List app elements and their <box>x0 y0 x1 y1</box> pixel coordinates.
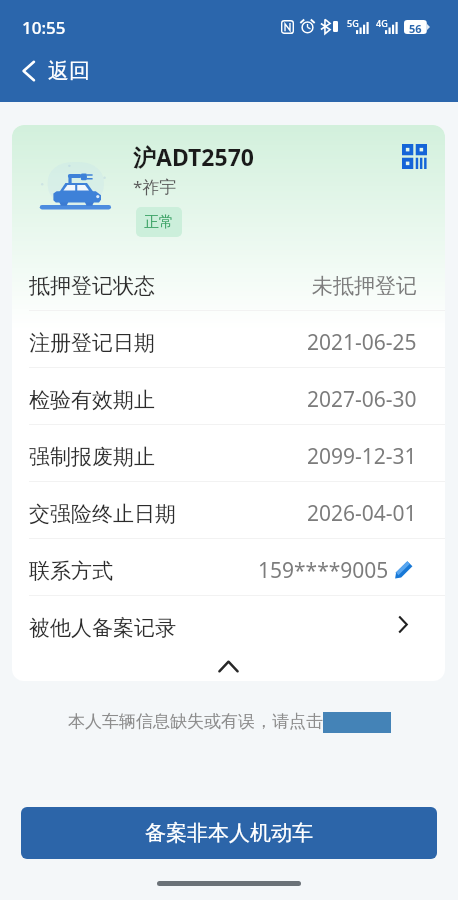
staticText: 沪ADT2570 <box>133 141 254 172</box>
staticText: 2026-04-01 <box>307 499 417 528</box>
staticText: 交强险终止日期 <box>29 501 176 527</box>
button[interactable]: 交强险终止日期 <box>12 482 445 539</box>
staticText: 2021-06-25 <box>307 328 417 357</box>
staticText: 未抵押登记 <box>312 273 417 299</box>
staticText: 返回 <box>48 58 90 84</box>
staticText: 本人车辆信息缺失或有误，请点击 <box>68 711 323 732</box>
staticText: 正常 <box>144 213 174 232</box>
staticText: 抵押登记状态 <box>29 273 155 299</box>
button[interactable]: 检验有效期止 <box>12 368 445 425</box>
staticText: 56 <box>409 21 422 36</box>
button[interactable]: 扫码 <box>394 136 435 177</box>
button[interactable]: 被他人备案记录 <box>12 596 445 653</box>
staticText: 检验有效期止 <box>29 387 155 413</box>
button[interactable]: 收起 <box>12 653 445 681</box>
staticText: 强制报废期止 <box>29 444 155 470</box>
button[interactable]: 联系方式 <box>12 539 445 596</box>
staticText: 159****9005 <box>258 556 389 585</box>
staticText: 2027-06-30 <box>307 385 417 414</box>
button[interactable]: 强制报废期止 <box>12 425 445 482</box>
button[interactable]: 返回 <box>0 51 106 91</box>
staticText: 注册登记日期 <box>29 330 155 356</box>
staticText: 10:55 <box>22 16 66 39</box>
staticText: 5G <box>347 17 359 29</box>
staticText: 2099-12-31 <box>307 442 417 471</box>
staticText: *祚宇 <box>133 175 177 198</box>
button[interactable]: 注册登记日期 <box>12 311 445 368</box>
button[interactable]: 备案非本人机动车 <box>21 807 437 859</box>
staticText: 备案非本人机动车 <box>145 820 313 846</box>
staticText: 4G <box>376 17 388 29</box>
staticText: 被他人备案记录 <box>29 615 176 641</box>
staticText: 联系方式 <box>29 558 113 584</box>
button[interactable]: 抵押登记状态 <box>12 254 445 311</box>
